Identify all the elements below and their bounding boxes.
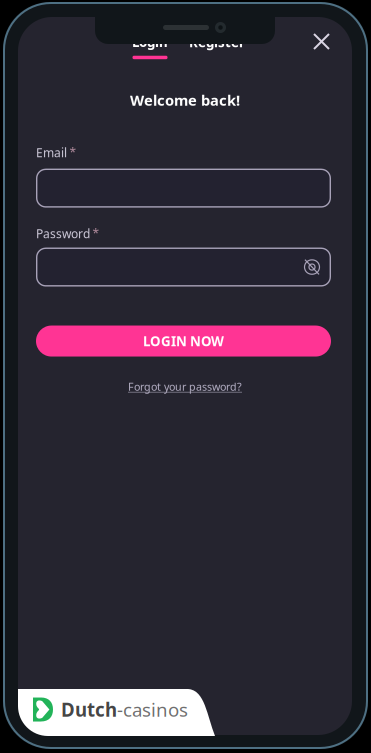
- staticText: Email: [36, 145, 67, 161]
- button[interactable]: Login: [132, 33, 168, 59]
- button[interactable]: Register: [189, 33, 245, 59]
- button[interactable]: Show password: [304, 259, 331, 275]
- staticText: Forgot your password?: [128, 380, 242, 394]
- staticText: *: [69, 144, 76, 160]
- staticText: LOGIN NOW: [143, 332, 224, 350]
- staticText: Password: [36, 226, 90, 241]
- staticText: Welcome back!: [130, 90, 240, 110]
- staticText: Register: [189, 33, 245, 51]
- staticText: *: [92, 225, 99, 241]
- button[interactable]: Forgot your password?: [18, 380, 352, 394]
- button[interactable]: LOGIN NOW: [36, 326, 331, 357]
- staticText: -casinos: [117, 697, 188, 722]
- staticText: Dutch: [61, 697, 117, 722]
- staticText: Login: [132, 33, 168, 51]
- button[interactable]: Close: [304, 24, 339, 59]
